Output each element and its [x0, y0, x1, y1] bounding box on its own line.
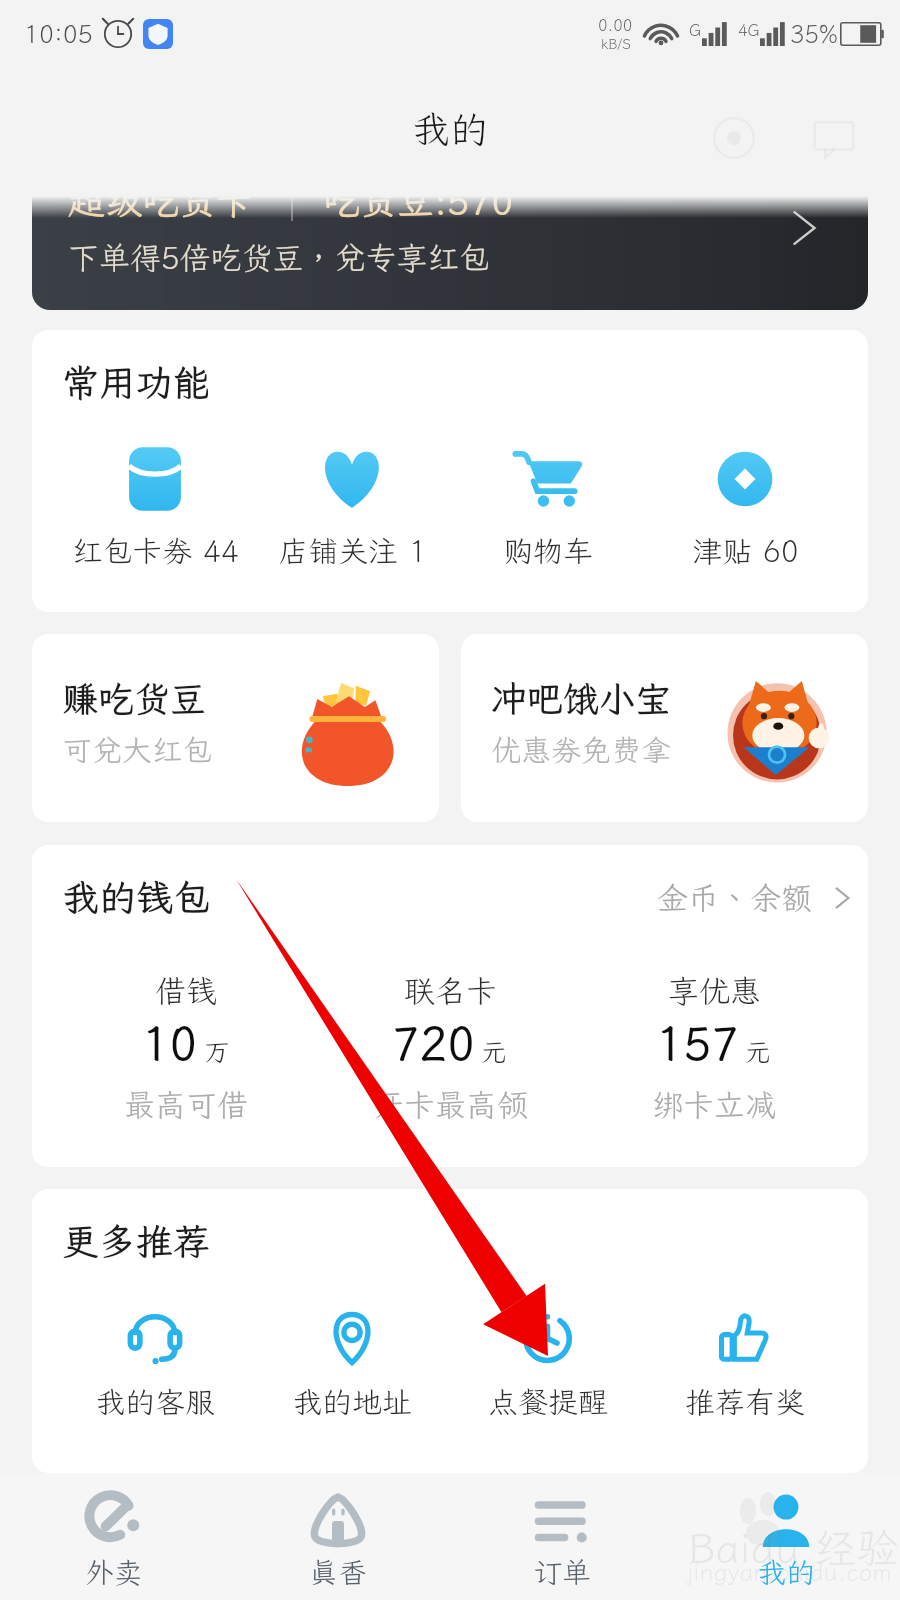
- button[interactable]: 购物车: [450, 439, 646, 571]
- staticText: 吃货豆:570: [323, 176, 514, 225]
- staticText: 优惠券免费拿: [491, 730, 671, 770]
- staticText: 推荐有奖: [685, 1382, 805, 1422]
- staticText: 我的: [757, 1553, 816, 1591]
- staticText: 常用功能: [62, 358, 210, 407]
- staticText: Baidu 经验: [688, 1520, 899, 1575]
- button[interactable]: 冲吧饿小宝: [461, 634, 868, 822]
- staticText: 我的: [412, 104, 489, 154]
- button[interactable]: 金币、余额: [657, 869, 858, 926]
- button[interactable]: Scan: [708, 112, 760, 164]
- staticText: 我的钱包: [62, 873, 210, 922]
- staticText: 35%: [790, 18, 838, 50]
- button[interactable]: 点餐提醒: [450, 1310, 646, 1422]
- staticText: 店铺关注 1: [278, 531, 427, 571]
- button[interactable]: 我的: [676, 1475, 896, 1599]
- staticText: 绑卡立减: [652, 1084, 776, 1125]
- staticText: 外卖: [85, 1553, 144, 1591]
- staticText: 红包卡券 44: [72, 531, 239, 571]
- staticText: 更多推荐: [62, 1217, 210, 1266]
- button[interactable]: 超级吃货卡: [32, 150, 868, 310]
- button[interactable]: 订单: [452, 1475, 672, 1599]
- button[interactable]: 红包卡券 44: [57, 439, 253, 571]
- button[interactable]: 联名卡: [318, 970, 582, 1125]
- staticText: 最高可借: [124, 1084, 248, 1125]
- staticText: 点餐提醒: [488, 1382, 608, 1422]
- staticText: 万: [204, 1034, 231, 1068]
- button[interactable]: 我的地址: [254, 1310, 450, 1422]
- staticText: 购物车: [503, 531, 593, 571]
- button[interactable]: 享优惠: [582, 970, 846, 1125]
- button[interactable]: 津贴 60: [647, 439, 843, 571]
- staticText: 联名卡: [404, 970, 497, 1011]
- button[interactable]: 真香: [228, 1475, 448, 1599]
- staticText: G: [689, 19, 702, 40]
- staticText: 720: [392, 1013, 475, 1074]
- button[interactable]: 赚吃货豆: [32, 634, 439, 822]
- staticText: 0.00: [598, 14, 633, 35]
- staticText: 元: [745, 1034, 772, 1068]
- staticText: 元: [481, 1034, 508, 1068]
- button[interactable]: 推荐有奖: [647, 1310, 843, 1422]
- staticText: 金币、余额: [657, 877, 812, 918]
- button[interactable]: 借钱: [54, 970, 318, 1125]
- staticText: 可兑大红包: [62, 730, 212, 770]
- staticText: 10: [142, 1013, 198, 1074]
- staticText: 订单: [533, 1553, 592, 1591]
- staticText: 享优惠: [668, 970, 761, 1011]
- staticText: 真香: [309, 1553, 368, 1591]
- staticText: 4G: [738, 19, 760, 40]
- staticText: 我的地址: [292, 1382, 412, 1422]
- staticText: kB/S: [601, 35, 631, 53]
- staticText: 下单得5倍吃货豆，兑专享红包: [68, 237, 490, 278]
- staticText: 我的客服: [95, 1382, 215, 1422]
- button[interactable]: 店铺关注 1: [254, 439, 450, 571]
- staticText: 超级吃货卡: [68, 176, 253, 225]
- button[interactable]: 我的客服: [57, 1310, 253, 1422]
- staticText: jingyan.baidu.com: [686, 1556, 892, 1588]
- staticText: 赚吃货豆: [62, 675, 207, 722]
- button[interactable]: 外卖: [4, 1475, 224, 1599]
- staticText: 157: [656, 1013, 739, 1074]
- staticText: 津贴 60: [692, 531, 799, 571]
- staticText: 10:05: [24, 17, 93, 50]
- staticText: 开卡最高领: [373, 1084, 528, 1125]
- staticText: 借钱: [155, 970, 217, 1011]
- staticText: 冲吧饿小宝: [491, 675, 672, 722]
